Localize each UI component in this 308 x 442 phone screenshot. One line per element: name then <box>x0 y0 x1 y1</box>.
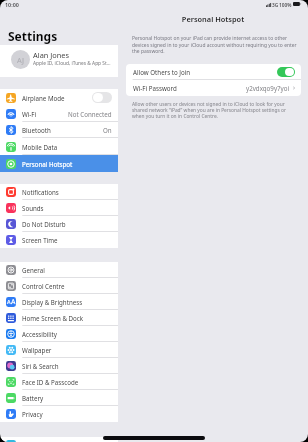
staticText: Settings <box>8 28 58 44</box>
button[interactable]: Wi-Fi <box>0 105 118 122</box>
button[interactable]: Allow Others to Join <box>126 64 301 80</box>
button[interactable]: Screen Time <box>0 232 118 248</box>
button[interactable]: Do Not Disturb <box>0 216 118 232</box>
button[interactable]: Notifications <box>0 184 118 200</box>
staticText: Home Screen & Dock <box>22 314 84 322</box>
button[interactable]: Wallpaper <box>0 342 118 358</box>
staticText: Personal Hotspot <box>118 14 308 24</box>
button[interactable]: General <box>0 262 118 278</box>
button[interactable] <box>0 437 118 442</box>
staticText: Notifications <box>22 188 59 196</box>
staticText: 100% <box>279 2 292 9</box>
staticText: AJ <box>17 55 25 65</box>
staticText: Not Connected <box>68 110 112 118</box>
staticText: Battery <box>22 394 44 402</box>
staticText: Wi-Fi <box>22 110 37 118</box>
staticText: Sounds <box>22 204 44 212</box>
staticText: 10:00 <box>5 1 19 8</box>
staticText: On <box>103 126 112 134</box>
button[interactable]: Accessibility <box>0 326 118 342</box>
staticText: Allow Others to Join <box>133 68 191 76</box>
staticText: Control Centre <box>22 282 65 290</box>
staticText: Allow other users or devices not signed … <box>132 101 292 119</box>
staticText: Bluetooth <box>22 126 51 134</box>
staticText: Privacy <box>22 410 43 418</box>
staticText: 3G <box>272 2 279 9</box>
button[interactable]: Mobile Data <box>0 138 118 155</box>
button[interactable]: Airplane Mode <box>0 89 118 106</box>
button[interactable]: Control Centre <box>0 278 118 294</box>
staticText: Mobile Data <box>22 143 58 151</box>
button[interactable]: Display & Brightness <box>0 294 118 310</box>
button[interactable]: Personal Hotspot <box>0 155 118 172</box>
staticText: General <box>22 266 45 274</box>
button[interactable]: Battery <box>0 390 118 406</box>
button[interactable]: Siri & Search <box>0 358 118 374</box>
button[interactable]: AJ <box>0 45 118 77</box>
staticText: Accessibility <box>22 330 57 338</box>
staticText: Do Not Disturb <box>22 220 66 228</box>
button[interactable]: Wi-Fi Password <box>126 80 301 96</box>
staticText: Siri & Search <box>22 362 59 370</box>
staticText: Alan Jones <box>33 50 70 60</box>
staticText: Screen Time <box>22 236 58 244</box>
button[interactable]: Home Screen & Dock <box>0 310 118 326</box>
button[interactable]: Sounds <box>0 200 118 216</box>
button[interactable]: Bluetooth <box>0 122 118 138</box>
staticText: Wallpaper <box>22 346 52 354</box>
button[interactable]: Privacy <box>0 406 118 422</box>
staticText: Wi-Fi Password <box>133 84 177 92</box>
staticText: Airplane Mode <box>22 94 65 102</box>
button[interactable]: Face ID & Passcode <box>0 374 118 390</box>
staticText: Personal Hotspot on your iPad can provid… <box>132 35 300 54</box>
staticText: Personal Hotspot <box>22 160 73 168</box>
staticText: y2vdxqo9y7yoi <box>246 84 290 92</box>
staticText: Apple ID, iCloud, iTunes & App St... <box>33 60 111 67</box>
staticText: Display & Brightness <box>22 298 83 306</box>
staticText: Face ID & Passcode <box>22 378 79 386</box>
